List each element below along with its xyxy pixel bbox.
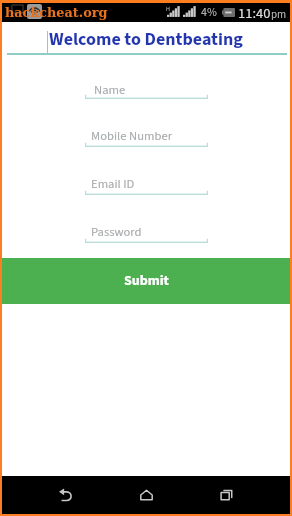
button[interactable]: Submit [2,258,290,304]
staticText: Password [91,223,142,241]
staticText: 11:40 [238,3,271,22]
button[interactable]: Name [85,75,208,99]
staticText: H [166,5,170,14]
button[interactable]: Email ID [85,171,208,195]
button[interactable]: Mobile Number [85,123,208,147]
staticText: Mobile Number [91,127,173,145]
button[interactable]: Password [85,219,208,243]
button[interactable]: Recent apps [186,476,266,514]
button[interactable]: Home [106,476,186,514]
staticText: 4% [201,4,217,21]
staticText: pm [271,7,287,23]
button[interactable]: Back [26,476,106,514]
staticText: hackcheat.org [5,5,108,20]
staticText: Welcome to Dentbeating [49,27,243,49]
staticText: Name [94,81,126,99]
staticText: Email ID [91,175,135,193]
staticText: Submit [124,271,169,291]
